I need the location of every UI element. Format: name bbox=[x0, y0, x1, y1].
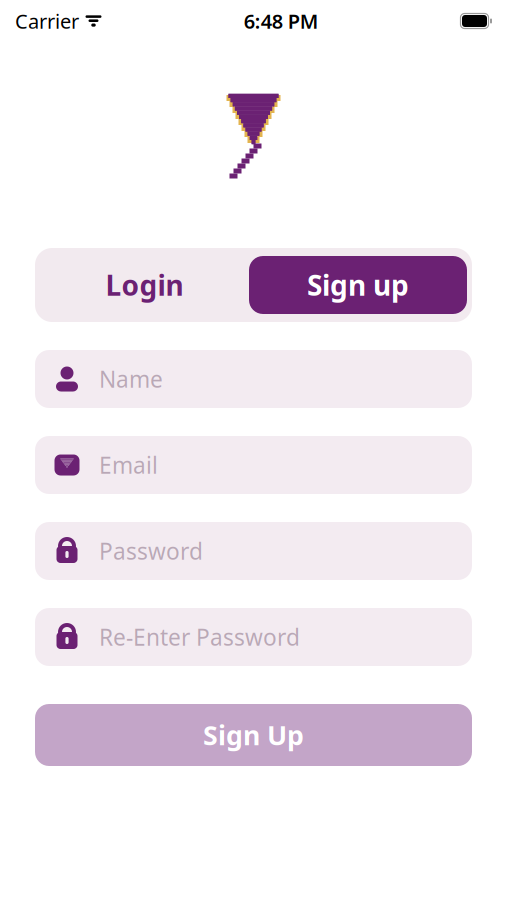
button[interactable]: Sign up bbox=[249, 256, 467, 314]
staticText: Re-Enter Password bbox=[99, 622, 300, 652]
staticText: Login bbox=[105, 266, 183, 304]
staticText: Carrier bbox=[15, 8, 79, 34]
staticText: 6:48 PM bbox=[244, 8, 319, 34]
button[interactable]: Re-Enter Password bbox=[35, 608, 472, 666]
staticText: Email bbox=[99, 450, 158, 480]
staticText: Sign up bbox=[307, 266, 409, 304]
button[interactable]: Login bbox=[40, 256, 249, 314]
button[interactable]: Email bbox=[35, 436, 472, 494]
staticText: Password bbox=[99, 536, 203, 566]
staticText: Name bbox=[99, 364, 163, 394]
staticText: Sign Up bbox=[203, 717, 304, 753]
button[interactable]: Name bbox=[35, 350, 472, 408]
button[interactable]: Sign Up bbox=[35, 704, 472, 766]
button[interactable]: Password bbox=[35, 522, 472, 580]
